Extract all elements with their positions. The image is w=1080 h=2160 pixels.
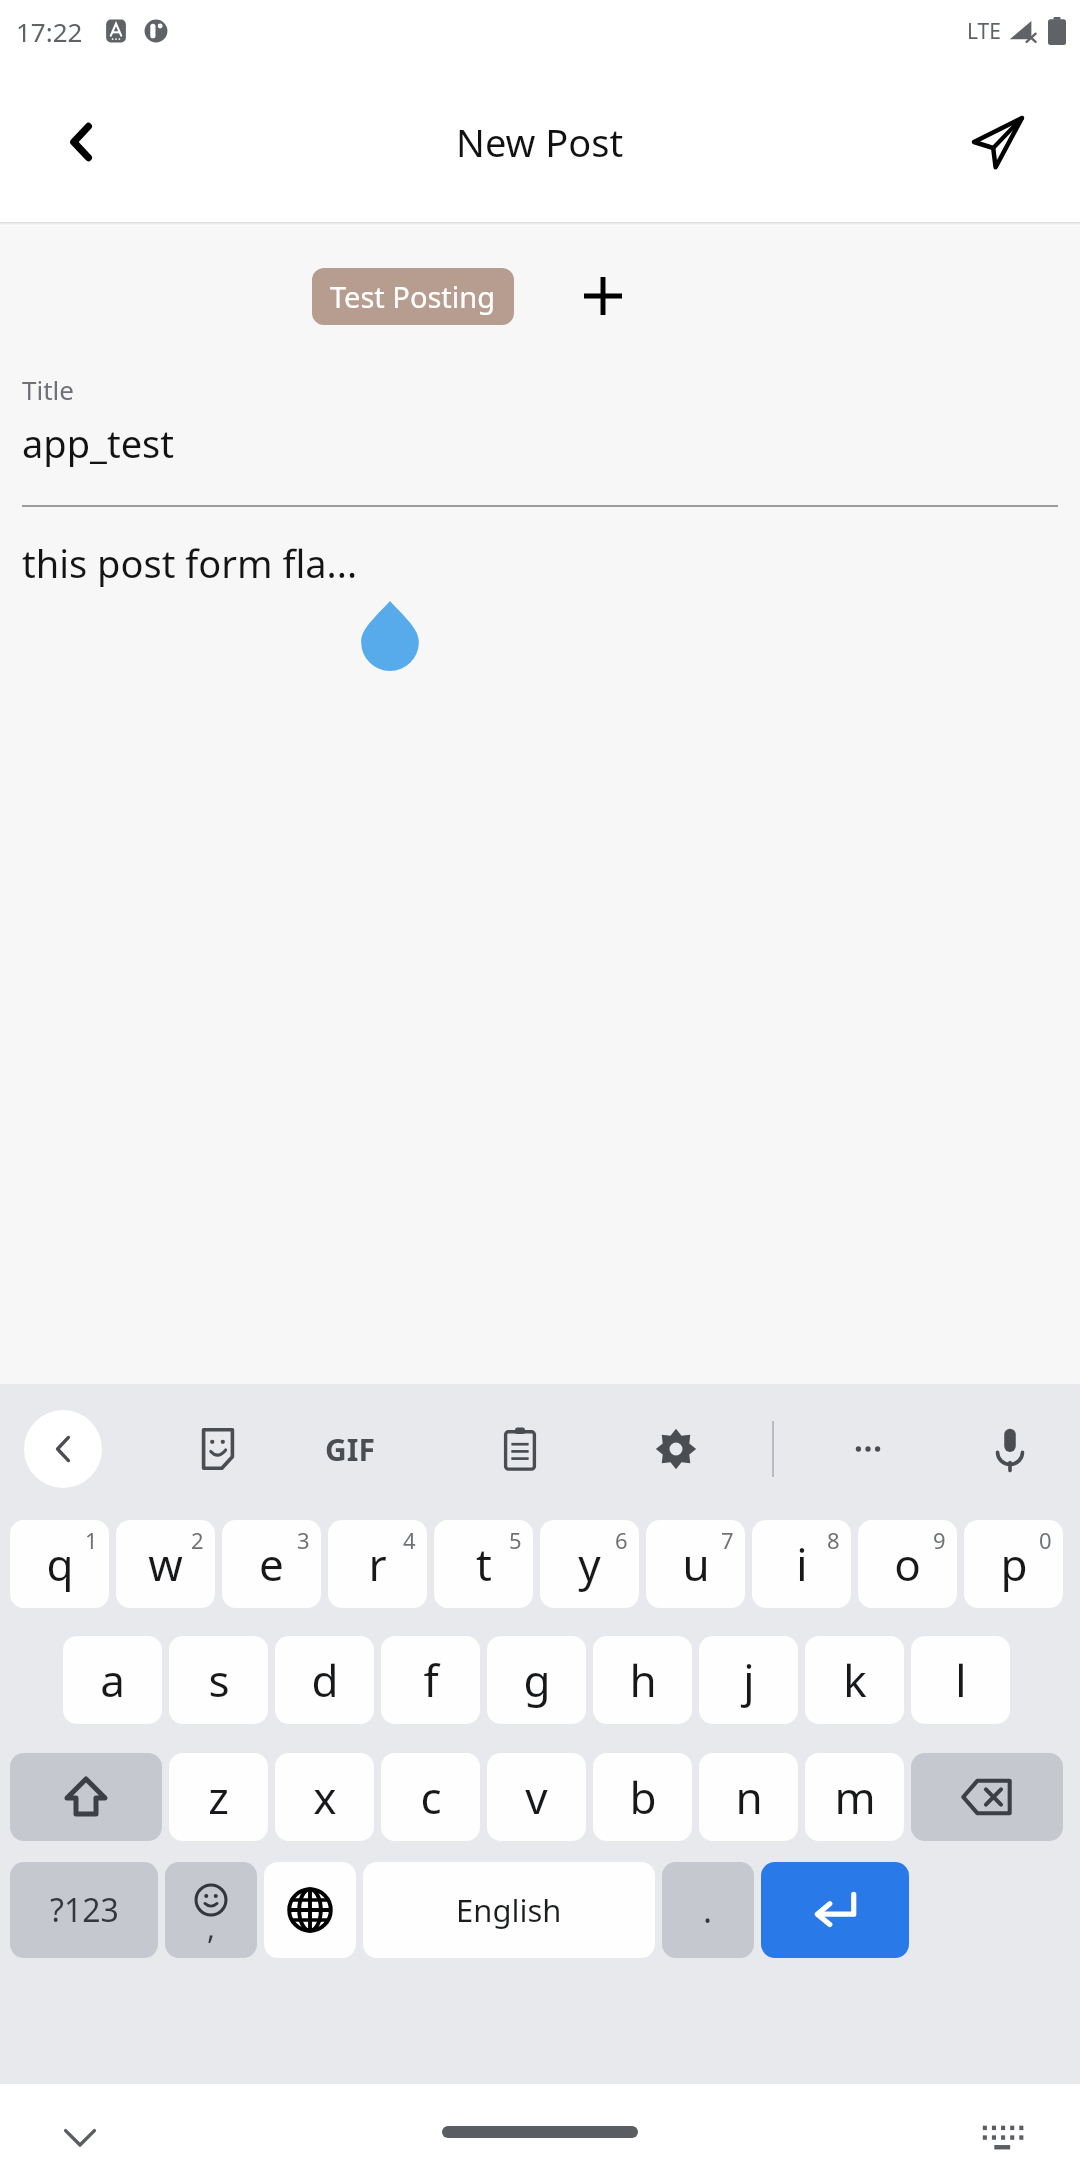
button[interactable]: Stickers (178, 1409, 258, 1489)
button[interactable]: i (752, 1520, 851, 1608)
button[interactable]: app_test (22, 417, 1080, 469)
staticText: s (208, 1650, 230, 1710)
staticText: 2 (191, 1525, 204, 1555)
staticText: f (423, 1650, 439, 1710)
button[interactable]: Send (946, 90, 1050, 194)
button[interactable]: Back (24, 1410, 102, 1488)
button[interactable]: x (275, 1753, 374, 1841)
staticText: app_test (22, 417, 175, 469)
staticText: l (955, 1650, 967, 1710)
staticText: ?123 (50, 1888, 119, 1932)
button[interactable]: Test Posting (312, 268, 514, 325)
button[interactable]: v (487, 1753, 586, 1841)
button[interactable]: Settings (636, 1409, 716, 1489)
staticText: Title (22, 372, 74, 407)
staticText: 6 (615, 1525, 628, 1555)
button[interactable]: Add tag (569, 262, 637, 330)
button[interactable]: Back (30, 90, 134, 194)
staticText: 0 (1039, 1525, 1052, 1555)
staticText: o (894, 1534, 921, 1594)
button[interactable]: d (275, 1636, 374, 1724)
button[interactable]: g (487, 1636, 586, 1724)
staticText: this post form fla... (22, 537, 358, 589)
staticText: t (476, 1534, 492, 1594)
button[interactable]: ?123 (10, 1862, 158, 1958)
staticText: English (456, 1889, 562, 1931)
button[interactable]: z (169, 1753, 268, 1841)
staticText: New Post (456, 116, 624, 168)
staticText: e (259, 1534, 284, 1594)
staticText: 4 (403, 1525, 416, 1555)
button[interactable]: k (805, 1636, 904, 1724)
button[interactable]: e (222, 1520, 321, 1608)
button[interactable]: Hide keyboard (40, 2114, 120, 2160)
staticText: i (796, 1534, 808, 1594)
button[interactable]: Change language (264, 1862, 356, 1958)
staticText: w (148, 1534, 183, 1594)
button[interactable]: q (10, 1520, 109, 1608)
staticText: q (46, 1534, 74, 1594)
staticText: 17:22 (16, 14, 83, 49)
button[interactable]: j (699, 1636, 798, 1724)
staticText: 9 (933, 1525, 946, 1555)
staticText: v (525, 1767, 548, 1827)
button[interactable]: Switch keyboard (966, 2116, 1038, 2160)
staticText: a (100, 1650, 125, 1710)
button[interactable]: English (363, 1862, 655, 1958)
staticText: k (843, 1650, 867, 1710)
staticText: . (703, 1887, 713, 1933)
button[interactable]: n (699, 1753, 798, 1841)
button[interactable]: r (328, 1520, 427, 1608)
button[interactable]: Enter (761, 1862, 909, 1958)
staticText: LTE (967, 17, 1001, 46)
staticText: , (207, 1907, 216, 1948)
staticText: z (208, 1767, 229, 1827)
staticText: GIF (325, 1429, 375, 1470)
button[interactable]: GIF (310, 1409, 390, 1489)
button[interactable]: p (964, 1520, 1063, 1608)
button[interactable]: c (381, 1753, 480, 1841)
staticText: h (629, 1650, 657, 1710)
button[interactable]: Emoji (165, 1862, 257, 1958)
button[interactable]: t (434, 1520, 533, 1608)
staticText: Test Posting (330, 277, 496, 316)
button[interactable]: Shift (10, 1753, 162, 1841)
staticText: g (523, 1650, 551, 1710)
button[interactable]: a (63, 1636, 162, 1724)
staticText: p (1000, 1534, 1028, 1594)
button[interactable]: Voice input (970, 1409, 1050, 1489)
button[interactable]: h (593, 1636, 692, 1724)
button[interactable]: m (805, 1753, 904, 1841)
button[interactable]: Backspace (911, 1753, 1063, 1841)
staticText: 7 (721, 1525, 734, 1555)
staticText: b (629, 1767, 657, 1827)
staticText: n (735, 1767, 763, 1827)
button[interactable]: f (381, 1636, 480, 1724)
staticText: y (578, 1534, 601, 1594)
button[interactable]: u (646, 1520, 745, 1608)
staticText: x (313, 1767, 337, 1827)
staticText: m (834, 1767, 876, 1827)
staticText: u (682, 1534, 710, 1594)
staticText: 8 (827, 1525, 840, 1555)
button[interactable]: o (858, 1520, 957, 1608)
staticText: d (311, 1650, 339, 1710)
staticText: 3 (297, 1525, 310, 1555)
staticText: j (743, 1650, 755, 1710)
button[interactable]: . (662, 1862, 754, 1958)
button[interactable]: this post form fla... (0, 537, 1080, 671)
button[interactable]: s (169, 1636, 268, 1724)
button[interactable]: b (593, 1753, 692, 1841)
button[interactable]: More (828, 1409, 908, 1489)
staticText: c (420, 1767, 442, 1827)
staticText: 1 (85, 1525, 98, 1555)
staticText: 5 (509, 1525, 522, 1555)
staticText: r (368, 1534, 387, 1594)
button[interactable]: l (911, 1636, 1010, 1724)
button[interactable]: Clipboard (480, 1409, 560, 1489)
button[interactable]: w (116, 1520, 215, 1608)
button[interactable]: y (540, 1520, 639, 1608)
